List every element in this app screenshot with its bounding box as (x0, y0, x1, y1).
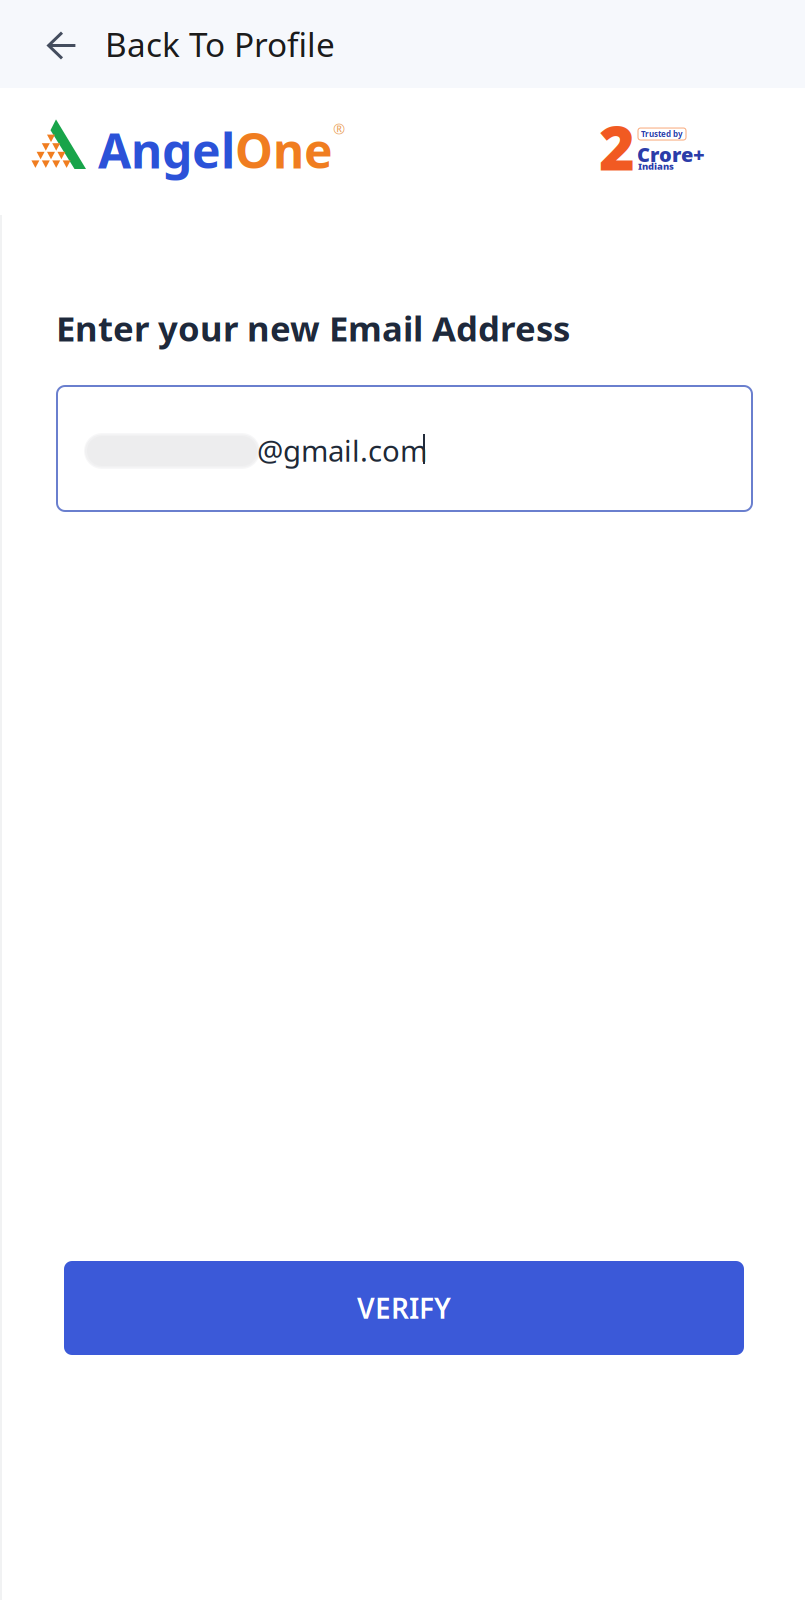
staticText: Enter your new Email Address (56, 305, 570, 351)
button[interactable]: VERIFY (64, 1261, 744, 1355)
staticText: ® (333, 119, 345, 138)
staticText: Back To Profile (105, 22, 335, 66)
staticText: VERIFY (357, 1289, 451, 1327)
staticText: Crore+ (637, 141, 705, 168)
staticText: Indians (638, 160, 674, 172)
staticText: Angel (98, 118, 235, 182)
button[interactable]: Back To Profile (0, 0, 805, 88)
button[interactable]: Email address text field (57, 386, 752, 511)
staticText: 2 (599, 106, 635, 187)
staticText: @gmail.com (257, 431, 427, 470)
staticText: Trusted by (641, 129, 683, 139)
staticText: One (235, 118, 333, 182)
